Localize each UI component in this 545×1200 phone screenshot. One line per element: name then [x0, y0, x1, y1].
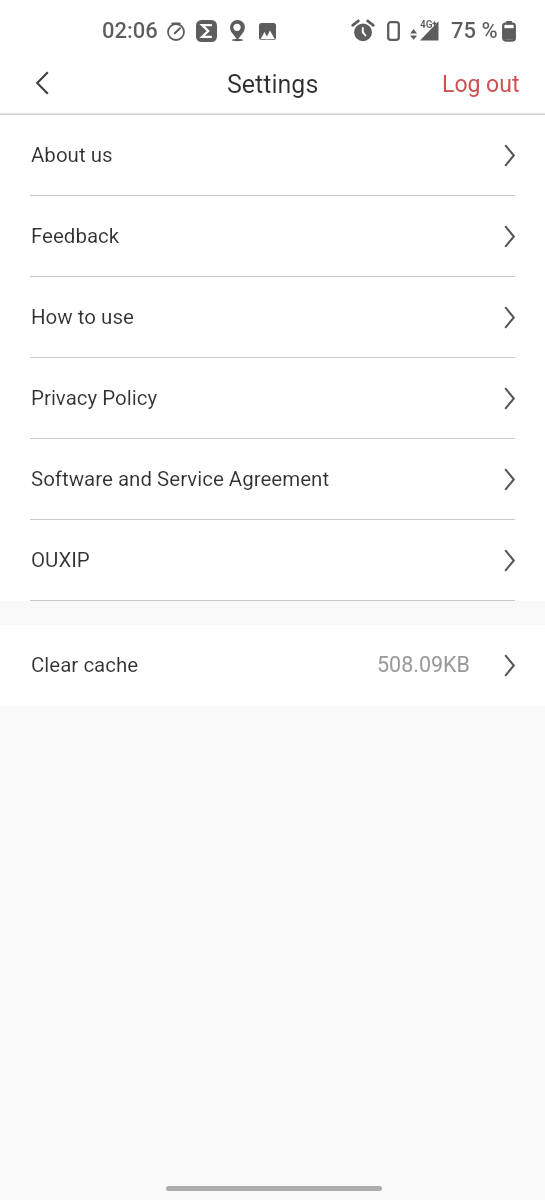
staticText: How to use [31, 305, 134, 329]
button[interactable]: About us [0, 115, 545, 196]
staticText: OUXIP [31, 548, 90, 572]
staticText: Privacy Policy [31, 386, 158, 410]
staticText: Software and Service Agreement [31, 467, 330, 491]
button[interactable]: How to use [0, 277, 545, 358]
staticText: 75 % [451, 18, 498, 44]
staticText: 02:06 [102, 18, 158, 44]
staticText: Log out [442, 71, 520, 98]
button[interactable]: Software and Service Agreement [0, 439, 545, 520]
staticText: Feedback [31, 224, 120, 248]
button[interactable]: Feedback [0, 196, 545, 277]
button[interactable]: Back [23, 64, 61, 102]
staticText: 4G [420, 19, 433, 31]
button[interactable]: Clear cache [0, 625, 545, 706]
button[interactable]: OUXIP [0, 520, 545, 601]
staticText: Clear cache [31, 653, 139, 677]
button[interactable]: Privacy Policy [0, 358, 545, 439]
staticText: Settings [227, 70, 319, 99]
button[interactable]: Log out [433, 63, 529, 106]
staticText: 508.09KB [377, 652, 470, 677]
staticText: About us [31, 143, 113, 167]
